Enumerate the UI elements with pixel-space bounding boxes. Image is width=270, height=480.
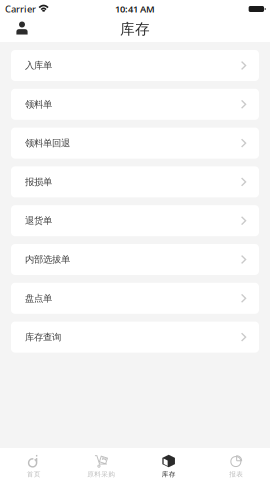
staticText: 原料采购 [87,470,115,478]
button[interactable]: 报损单 [11,166,259,197]
staticText: Carrier [5,3,36,15]
staticText: 领料单回退 [25,137,70,149]
button[interactable]: 原料采购 [67,448,135,480]
staticText: 库存 [162,470,176,478]
staticText: 领料单 [25,99,52,110]
staticText: 入库单 [25,60,52,71]
staticText: 10:41 AM [115,3,155,15]
staticText: 报损单 [25,176,52,188]
button[interactable]: 首页 [0,448,67,480]
staticText: 报表 [229,470,243,478]
staticText: 首页 [27,470,41,478]
button[interactable]: 内部选拔单 [11,244,259,275]
staticText: 内部选拔单 [25,254,70,265]
button[interactable]: Account [0,17,36,40]
staticText: 库存查询 [25,331,61,343]
button[interactable]: 盘点单 [11,283,259,314]
button[interactable]: 入库单 [11,50,259,81]
staticText: 盘点单 [25,293,52,304]
staticText: 退货单 [25,215,52,226]
staticText: 库存 [120,20,150,38]
button[interactable]: 领料单 [11,89,259,120]
button[interactable]: 库存 [135,448,202,480]
button[interactable]: 报表 [202,448,270,480]
button[interactable]: 退货单 [11,205,259,236]
button[interactable]: 库存查询 [11,322,259,353]
button[interactable]: 领料单回退 [11,128,259,159]
